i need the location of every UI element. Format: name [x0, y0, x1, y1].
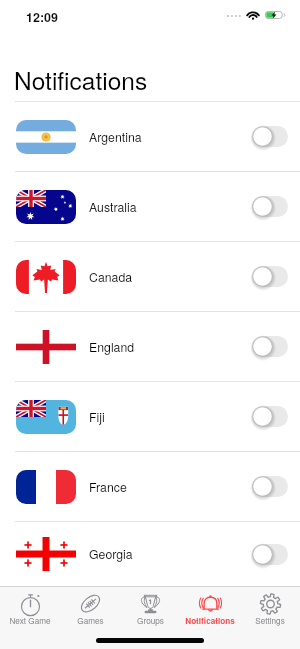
- staticText: Games: [77, 615, 104, 627]
- staticText: Argentina: [89, 128, 142, 146]
- button[interactable]: Groups: [120, 587, 180, 632]
- staticText: Next Game: [9, 615, 51, 627]
- button[interactable]: Toggle notifications: [252, 196, 288, 217]
- staticText: Fiji: [89, 408, 105, 426]
- staticText: Notifications: [14, 62, 148, 97]
- button[interactable]: Toggle notifications: [252, 336, 288, 357]
- button[interactable]: Argentina: [0, 102, 300, 171]
- staticText: Notifications: [185, 615, 235, 627]
- button[interactable]: Settings: [240, 587, 300, 632]
- button[interactable]: France: [0, 452, 300, 521]
- staticText: England: [89, 338, 135, 356]
- staticText: France: [89, 478, 127, 496]
- button[interactable]: Toggle notifications: [252, 544, 288, 565]
- button[interactable]: Fiji: [0, 382, 300, 451]
- button[interactable]: England: [0, 312, 300, 381]
- staticText: Groups: [137, 615, 164, 627]
- staticText: Georgia: [89, 545, 133, 563]
- button[interactable]: Georgia: [0, 522, 300, 586]
- button[interactable]: Toggle notifications: [252, 266, 288, 287]
- staticText: 12:09: [26, 8, 58, 26]
- staticText: Canada: [89, 268, 133, 286]
- button[interactable]: Toggle notifications: [252, 126, 288, 147]
- staticText: Settings: [255, 615, 285, 627]
- button[interactable]: Toggle notifications: [252, 406, 288, 427]
- button[interactable]: Australia: [0, 172, 300, 241]
- button[interactable]: Next Game: [0, 587, 60, 632]
- staticText: Australia: [89, 198, 137, 216]
- button[interactable]: Canada: [0, 242, 300, 311]
- button[interactable]: Notifications: [180, 587, 240, 632]
- button[interactable]: Games: [60, 587, 120, 632]
- button[interactable]: Toggle notifications: [252, 476, 288, 497]
